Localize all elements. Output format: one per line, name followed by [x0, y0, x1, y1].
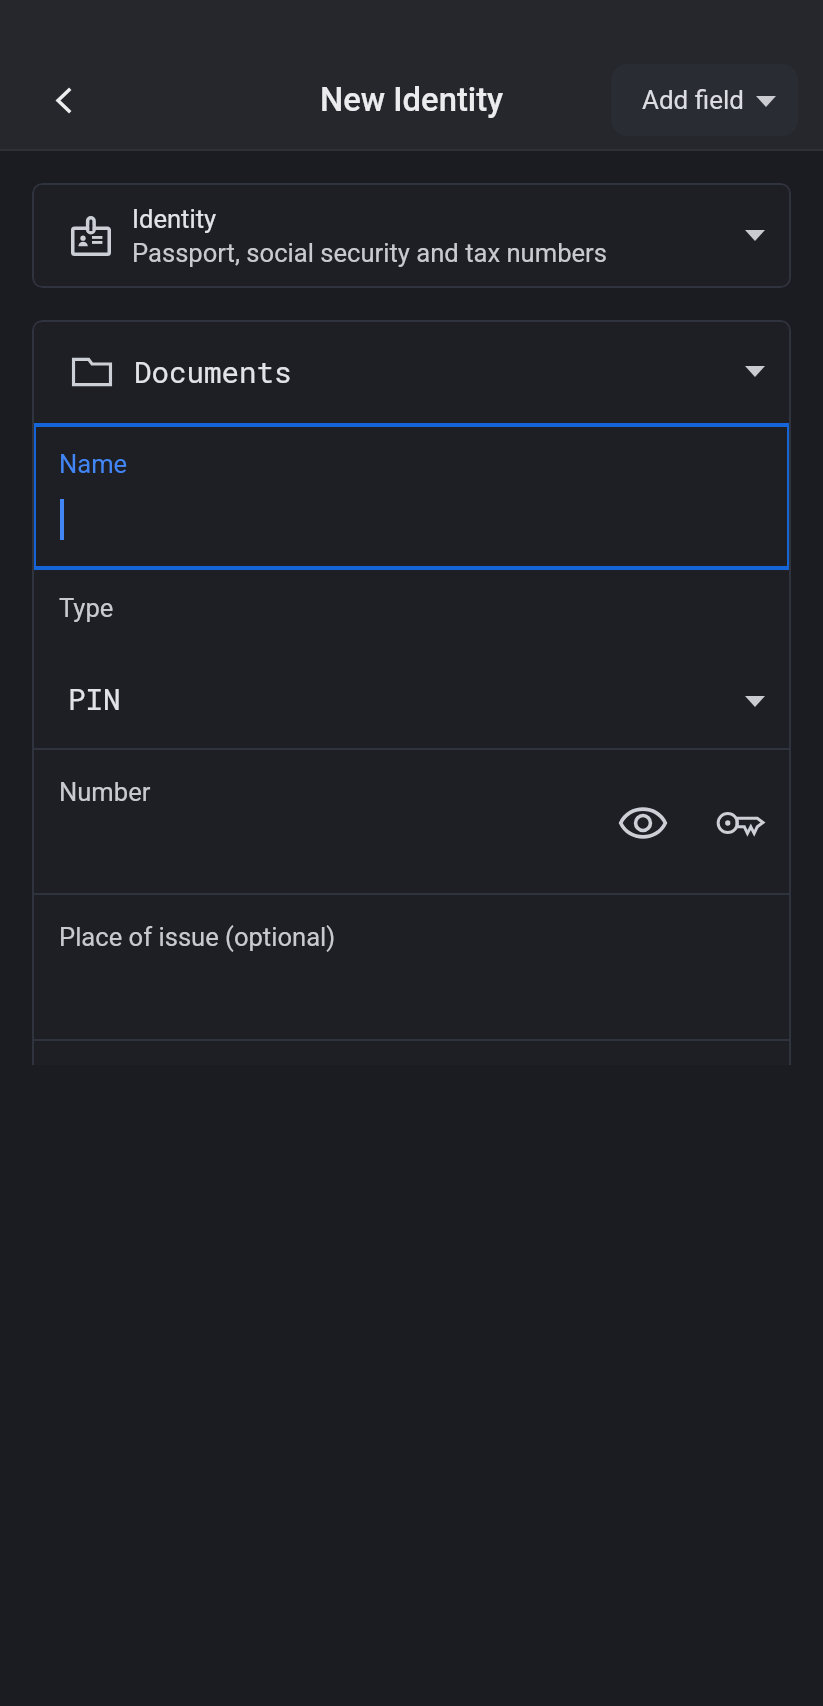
button[interactable]: Back — [31, 68, 95, 132]
staticText: Number — [59, 777, 151, 807]
staticText: Place of issue (optional) — [59, 922, 336, 952]
staticText: Documents — [134, 352, 292, 391]
staticText: Add field — [642, 85, 744, 115]
button[interactable]: Identity — [32, 183, 791, 288]
staticText: Identity — [132, 204, 217, 234]
staticText: New Identity — [320, 81, 504, 119]
button[interactable]: Place of issue (optional) — [32, 895, 791, 1039]
staticText: PIN — [68, 679, 121, 718]
button[interactable]: Documents — [32, 320, 791, 423]
button[interactable]: Generate password — [716, 799, 764, 847]
button[interactable]: Number — [32, 750, 791, 893]
staticText: Passport, social security and tax number… — [132, 238, 607, 268]
button[interactable]: Name — [32, 423, 791, 570]
staticText: Type — [59, 593, 114, 623]
staticText: Name — [59, 449, 128, 479]
button[interactable]: Add field — [611, 64, 798, 136]
button[interactable]: Show value — [619, 799, 667, 847]
button[interactable]: Type — [32, 570, 791, 748]
